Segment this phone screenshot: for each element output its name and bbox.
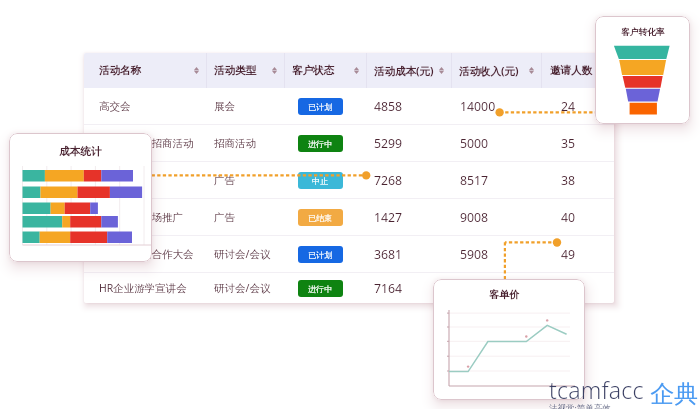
staticText: 企典	[650, 379, 698, 409]
other: Sort	[272, 67, 277, 74]
staticText: 8517	[460, 172, 489, 189]
button[interactable]: 线上渠道市场推广	[84, 199, 614, 235]
staticText: 中国企业家合作大会	[99, 248, 194, 261]
button[interactable]: 中止	[298, 172, 343, 189]
button[interactable]: 活动名称	[84, 53, 207, 88]
button[interactable]: 邀请人数	[542, 53, 614, 88]
staticText: 40	[561, 209, 576, 226]
staticText: 成本统计	[59, 145, 102, 158]
staticText: 华南区企业招商活动	[99, 137, 194, 150]
button[interactable]: 成本统计	[9, 133, 152, 262]
staticText: 研讨会/会议	[214, 281, 271, 295]
staticText: 7268	[374, 172, 403, 189]
other: Sort	[354, 67, 359, 74]
staticText: 3681	[374, 246, 403, 263]
staticText: 49	[561, 246, 576, 263]
staticText: 邀请人数	[550, 64, 592, 77]
button[interactable]: 高交会	[84, 88, 614, 124]
staticText: 客户状态	[292, 64, 334, 77]
button[interactable]: 网络广告	[84, 162, 614, 198]
staticText: 网络广告	[99, 174, 141, 187]
staticText: 5299	[374, 135, 403, 152]
staticText: 广告	[214, 174, 235, 187]
staticText: 7164	[374, 280, 403, 297]
other: Sort	[194, 67, 199, 74]
button[interactable]: 客户转化率	[595, 16, 690, 124]
staticText: 研讨会/会议	[214, 247, 271, 261]
staticText: 客单价	[489, 288, 519, 301]
staticText: 5000	[460, 135, 489, 152]
staticText: 活动收入(元)	[459, 64, 519, 78]
button[interactable]: 活动收入(元)	[452, 53, 542, 88]
button[interactable]: 已计划	[298, 246, 343, 263]
button[interactable]: 华南区企业招商活动	[84, 125, 614, 161]
button[interactable]: 活动类型	[207, 53, 285, 88]
staticText: 活动类型	[214, 64, 256, 77]
button[interactable]: 客单价	[433, 279, 585, 400]
staticText: 客户转化率	[621, 27, 665, 38]
staticText: 法视觉·简单高效	[549, 402, 611, 409]
button[interactable]: 进行中	[298, 280, 343, 297]
staticText: 高交会	[99, 100, 131, 113]
staticText: 4858	[374, 98, 403, 115]
staticText: 进行中	[308, 139, 333, 149]
staticText: 24	[561, 98, 576, 115]
staticText: 招商活动	[214, 137, 256, 150]
other: Sort	[439, 67, 444, 74]
button[interactable]: 中国企业家合作大会	[84, 236, 614, 272]
staticText: 进行中	[308, 284, 333, 294]
staticText: 已计划	[308, 102, 333, 112]
staticText: 35	[561, 135, 576, 152]
staticText: 活动名称	[99, 64, 141, 77]
staticText: 5908	[460, 246, 489, 263]
staticText: 展会	[214, 100, 235, 113]
staticText: 14000	[460, 98, 496, 115]
button[interactable]: 活动成本(元)	[367, 53, 452, 88]
other: Sort	[529, 67, 534, 74]
staticText: 9008	[460, 209, 489, 226]
button[interactable]: HR企业游学宣讲会	[84, 273, 614, 303]
staticText: 38	[561, 172, 576, 189]
button[interactable]: 进行中	[298, 135, 343, 152]
staticText: 1427	[374, 209, 403, 226]
staticText: tcamfacc	[549, 374, 644, 405]
button[interactable]: 已计划	[298, 98, 343, 115]
button[interactable]: 客户状态	[285, 53, 367, 88]
staticText: 广告	[214, 211, 235, 224]
staticText: 线上渠道市场推广	[99, 211, 183, 224]
staticText: 已计划	[308, 250, 333, 260]
staticText: 活动成本(元)	[374, 64, 434, 78]
staticText: 中止	[312, 176, 329, 186]
button[interactable]: 已结束	[298, 209, 343, 226]
staticText: 已结束	[308, 213, 333, 223]
staticText: HR企业游学宣讲会	[99, 281, 187, 295]
